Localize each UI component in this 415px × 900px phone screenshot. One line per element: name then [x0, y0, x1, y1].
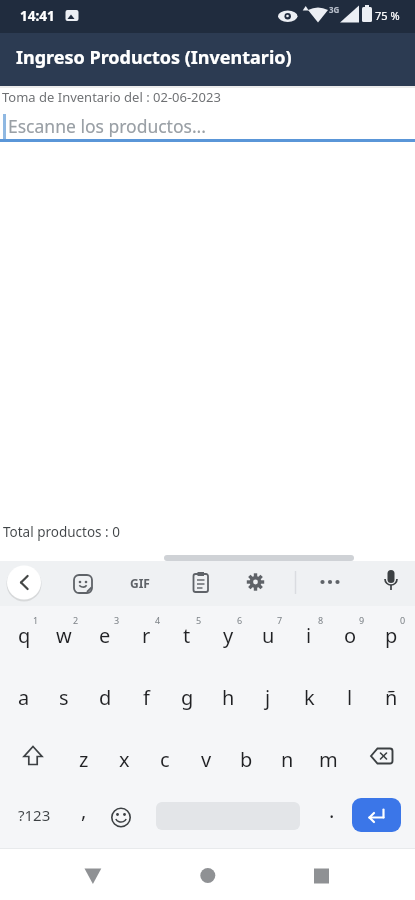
staticText: 7 [277, 614, 283, 626]
button[interactable]: u [248, 612, 288, 658]
staticText: k [304, 684, 315, 711]
staticText: h [222, 684, 235, 711]
button[interactable] [352, 798, 401, 832]
button[interactable]: ?123 [9, 795, 59, 835]
button[interactable]: c [145, 736, 185, 782]
button[interactable]: e [85, 612, 125, 658]
button[interactable]: s [44, 674, 84, 720]
staticText: t [183, 622, 191, 649]
staticText: p [385, 622, 398, 649]
button[interactable] [78, 861, 108, 891]
button[interactable]: v [186, 736, 226, 782]
button[interactable] [241, 568, 269, 596]
staticText: i [306, 622, 312, 649]
button[interactable]: r [126, 612, 166, 658]
staticText: y [223, 622, 234, 649]
button[interactable] [9, 567, 40, 598]
staticText: ?123 [18, 805, 51, 825]
staticText: 6 [237, 614, 243, 626]
staticText: r [142, 622, 151, 649]
button[interactable]: Ingreso Productos (Inventario) [0, 33, 415, 86]
button[interactable]: j [248, 674, 288, 720]
button[interactable]: z [64, 736, 104, 782]
button[interactable]: x [104, 736, 144, 782]
staticText: 4 [155, 614, 161, 626]
button[interactable] [306, 861, 336, 891]
button[interactable] [316, 568, 344, 596]
staticText: 3 [114, 614, 120, 626]
staticText: g [181, 684, 194, 711]
staticText: z [79, 746, 89, 773]
button[interactable]: q [4, 612, 44, 658]
button[interactable]: GIF [130, 575, 150, 591]
button[interactable]: o [330, 612, 370, 658]
staticText: d [99, 684, 112, 711]
staticText: l [347, 684, 353, 711]
button[interactable]: Escanne los productos... [0, 110, 415, 141]
staticText: a [18, 684, 30, 711]
staticText: Toma de Inventario del : 02-06-2023 [2, 88, 221, 106]
button[interactable]: g [167, 674, 207, 720]
staticText: 3G [329, 4, 340, 15]
button[interactable] [377, 568, 405, 596]
staticText: e [99, 622, 111, 649]
button[interactable]: b [226, 736, 266, 782]
staticText: 8 [318, 614, 324, 626]
staticText: o [344, 622, 357, 649]
staticText: 75 % [375, 8, 400, 23]
button[interactable]: k [289, 674, 329, 720]
button[interactable]: , [69, 789, 99, 831]
button[interactable]: . [317, 789, 347, 831]
button[interactable] [69, 568, 97, 596]
staticText: 0 [400, 614, 406, 626]
staticText: 5 [196, 614, 202, 626]
button[interactable]: y [208, 612, 248, 658]
staticText: ñ [385, 684, 398, 711]
staticText: 2 [73, 614, 79, 626]
staticText: Ingreso Productos (Inventario) [16, 45, 292, 70]
button[interactable] [361, 737, 401, 777]
button[interactable]: h [208, 674, 248, 720]
button[interactable] [193, 861, 223, 891]
button[interactable] [107, 803, 135, 831]
staticText: c [160, 746, 170, 773]
button[interactable]: w [44, 612, 84, 658]
staticText: j [265, 684, 271, 711]
staticText: q [18, 622, 31, 649]
button[interactable]: p [371, 612, 411, 658]
staticText: b [240, 746, 253, 773]
staticText: v [201, 746, 212, 773]
staticText: u [262, 622, 275, 649]
button[interactable]: d [85, 674, 125, 720]
staticText: f [143, 684, 150, 711]
button[interactable]: i [289, 612, 329, 658]
staticText: w [56, 622, 72, 649]
button[interactable] [186, 568, 214, 596]
button[interactable]: ñ [371, 674, 411, 720]
button[interactable]: t [167, 612, 207, 658]
staticText: s [59, 684, 69, 711]
button[interactable]: n [267, 736, 307, 782]
button[interactable] [13, 737, 53, 777]
button[interactable]: l [330, 674, 370, 720]
staticText: 9 [359, 614, 365, 626]
staticText: Escanne los productos... [8, 114, 206, 138]
staticText: 14:41 [20, 7, 55, 25]
button[interactable]: f [126, 674, 166, 720]
staticText: m [319, 746, 338, 773]
staticText: Total productos : 0 [3, 523, 120, 541]
staticText: . [329, 797, 335, 824]
button[interactable]: m [308, 736, 348, 782]
button[interactable]: a [4, 674, 44, 720]
staticText: , [81, 797, 87, 824]
staticText: 1 [33, 614, 39, 626]
staticText: n [281, 746, 294, 773]
staticText: x [119, 746, 130, 773]
